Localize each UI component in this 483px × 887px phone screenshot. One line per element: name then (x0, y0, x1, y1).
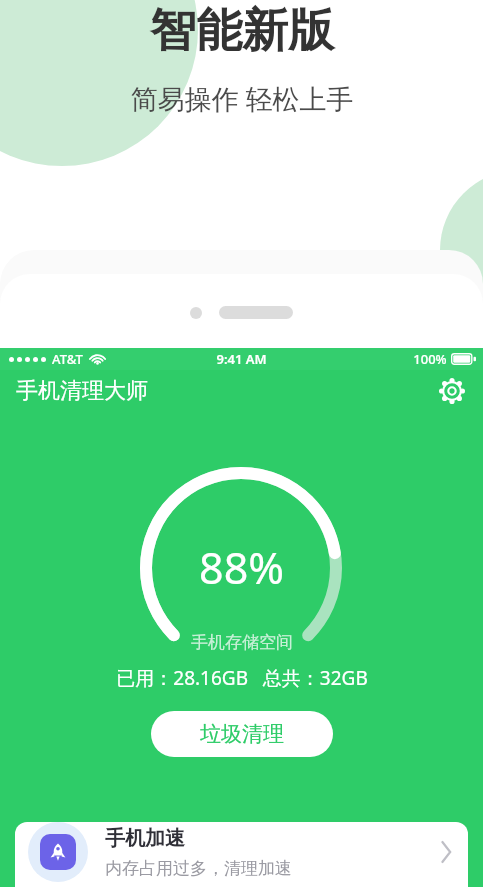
button[interactable]: 手机加速 (15, 822, 468, 887)
button[interactable]: Settings (435, 374, 469, 408)
staticText: 已用：28.16GB 总共：32GB (116, 665, 368, 691)
staticText: 简易操作 轻松上手 (130, 80, 354, 117)
staticText: 内存占用过多，清理加速 (105, 858, 292, 879)
button[interactable]: 垃圾清理 (151, 711, 333, 757)
staticText: AT&T (52, 350, 83, 368)
staticText: 智能新版 (150, 2, 334, 60)
staticText: 手机加速 (105, 826, 185, 851)
staticText: 手机清理大师 (16, 377, 148, 405)
staticText: 垃圾清理 (200, 721, 284, 747)
staticText: 100% (413, 350, 447, 368)
staticText: 9:41 AM (216, 350, 267, 368)
staticText: 88% (199, 538, 284, 597)
staticText: 手机存储空间 (191, 632, 293, 653)
